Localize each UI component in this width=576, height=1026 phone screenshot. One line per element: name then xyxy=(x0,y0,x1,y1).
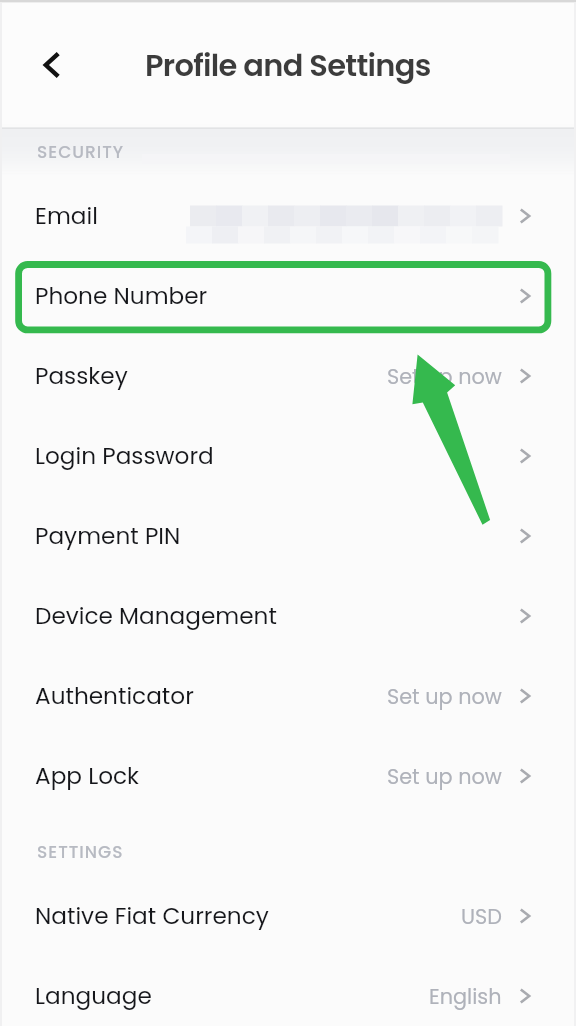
staticText: SETTINGS xyxy=(37,840,124,864)
button[interactable]: Passkey xyxy=(0,336,576,416)
staticText: App Lock xyxy=(35,760,140,792)
button[interactable]: App Lock xyxy=(0,736,576,816)
staticText: Language xyxy=(35,980,152,1012)
staticText: Passkey xyxy=(35,360,128,392)
button[interactable]: Authenticator xyxy=(0,656,576,736)
button[interactable]: Login Password xyxy=(0,416,576,496)
button[interactable]: Device Management xyxy=(0,576,576,656)
staticText: English xyxy=(429,982,502,1011)
staticText: Device Management xyxy=(35,600,277,632)
staticText: Native Fiat Currency xyxy=(35,900,269,932)
staticText: Authenticator xyxy=(35,680,194,712)
staticText: Profile and Settings xyxy=(145,44,431,87)
staticText: Phone Number xyxy=(35,280,208,312)
button[interactable]: Email xyxy=(0,176,576,256)
button[interactable]: Back xyxy=(32,45,72,85)
staticText: Login Password xyxy=(35,440,214,472)
staticText: Payment PIN xyxy=(35,520,181,552)
button[interactable]: Language xyxy=(0,956,576,1026)
staticText: Email xyxy=(35,200,98,232)
staticText: Set up now xyxy=(387,762,502,791)
staticText: Set up now xyxy=(387,682,502,711)
button[interactable]: Native Fiat Currency xyxy=(0,876,576,956)
staticText: USD xyxy=(461,902,502,931)
button[interactable]: Phone Number xyxy=(0,256,576,336)
staticText: SECURITY xyxy=(37,140,125,164)
staticText: Set up now xyxy=(387,362,502,391)
button[interactable]: Payment PIN xyxy=(0,496,576,576)
